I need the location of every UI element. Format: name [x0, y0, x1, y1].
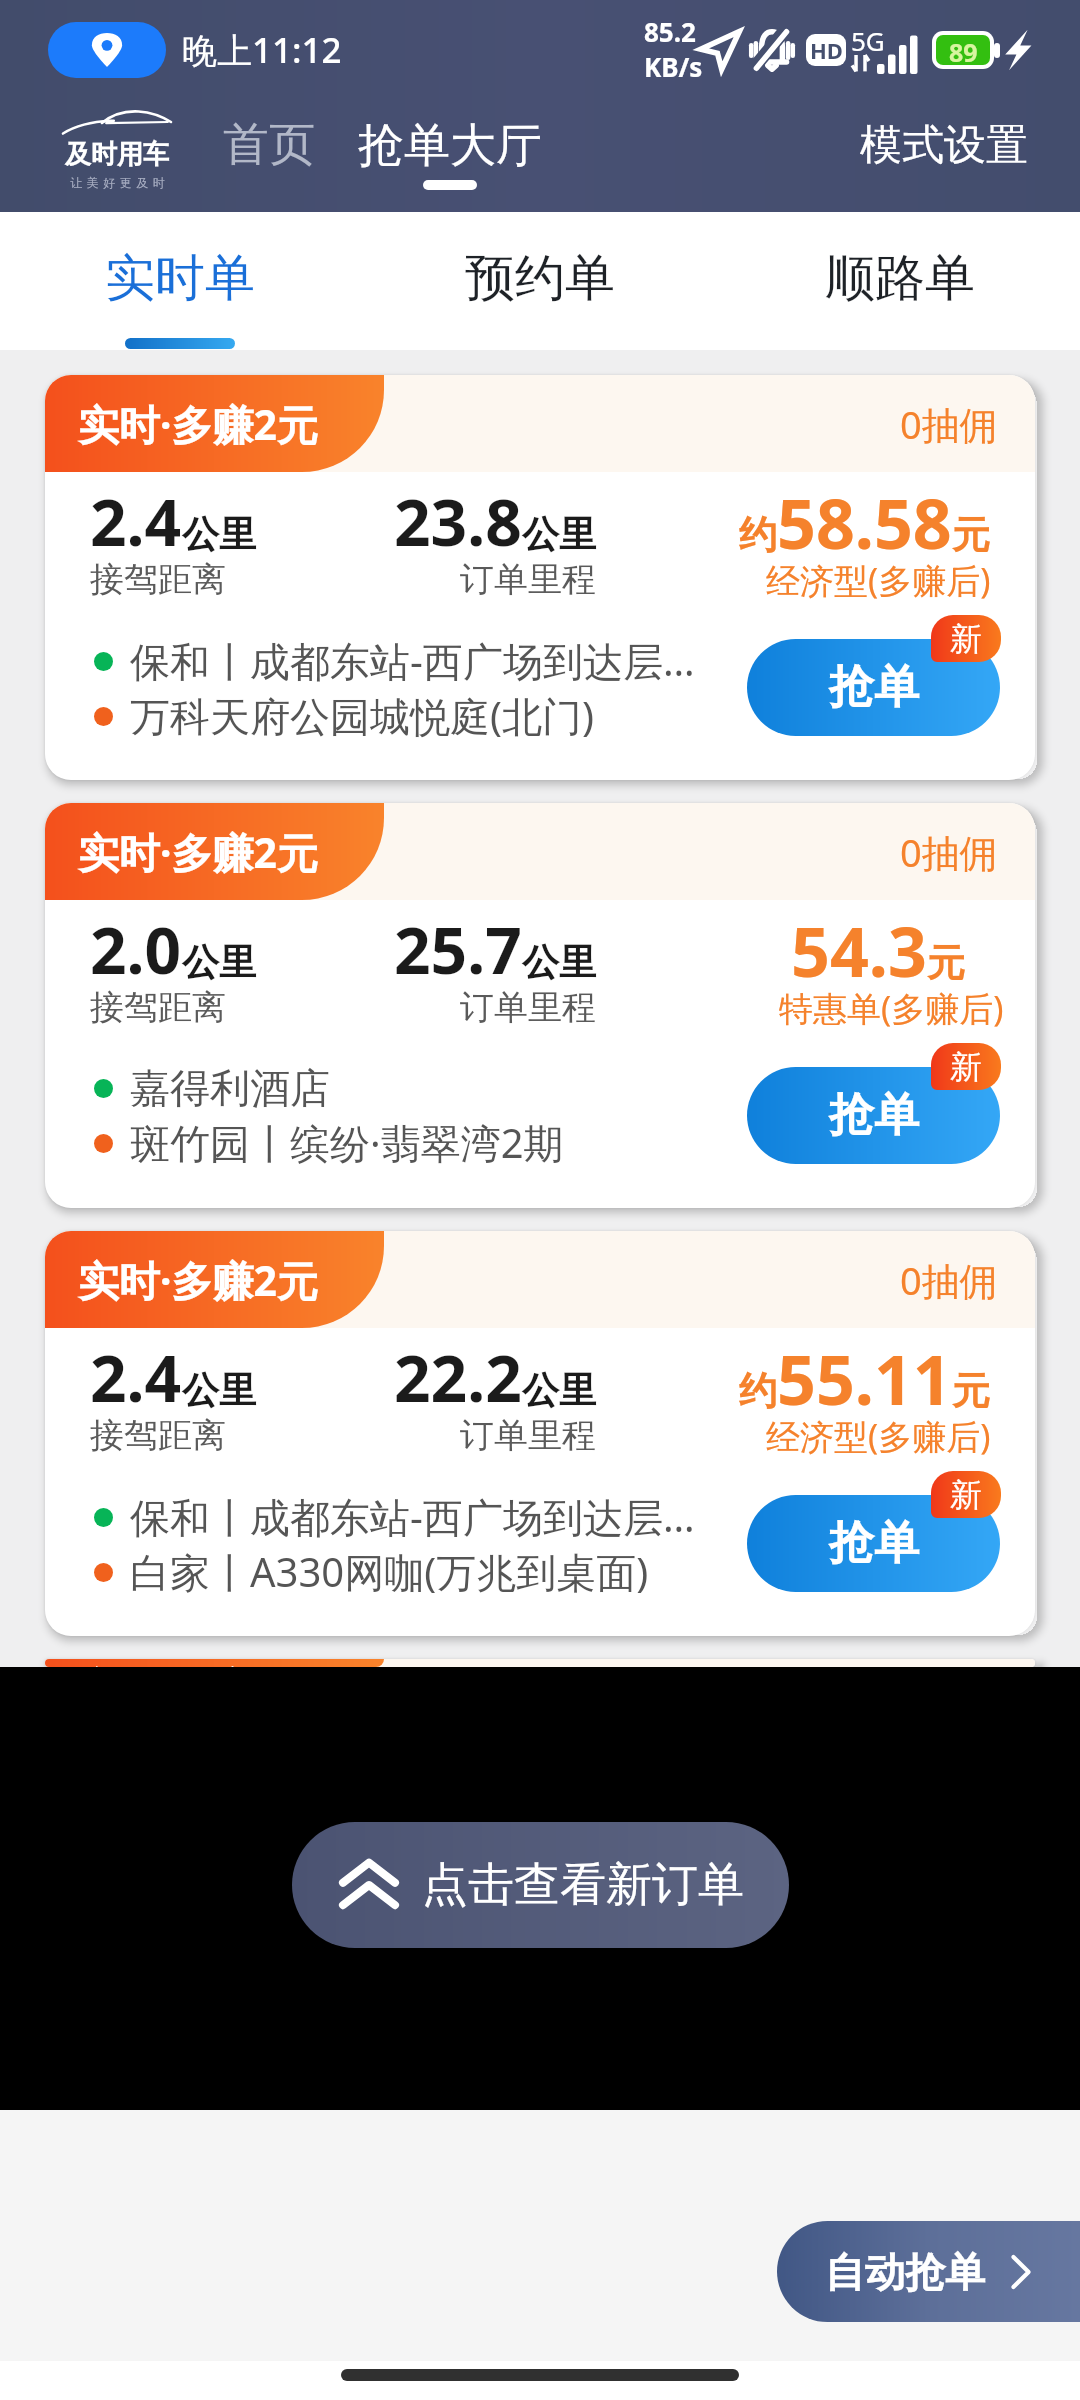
staticText: 54.3: [791, 904, 927, 997]
staticText: 斑竹园丨缤纷·翡翠湾2期: [130, 1115, 564, 1170]
staticText: 公里: [182, 1367, 256, 1414]
staticText: 抢单大厅: [358, 117, 542, 175]
staticText: 元: [927, 939, 965, 987]
staticText: 保和丨成都东站-西广场到达层…: [130, 633, 695, 688]
staticText: HD: [810, 35, 843, 65]
button[interactable]: 实时·多赚2元: [45, 803, 1035, 1208]
staticText: 0抽佣: [900, 398, 998, 450]
staticText: 接驾距离: [90, 558, 226, 601]
staticText: 公里: [522, 1367, 596, 1414]
button[interactable]: 抢单: [747, 1495, 1000, 1592]
staticText: 晚上11:12: [182, 26, 342, 74]
staticText: 0抽佣: [900, 1254, 998, 1306]
staticText: 经济型(多赚后): [766, 557, 991, 603]
staticText: 经济型(多赚后): [766, 1413, 991, 1459]
staticText: 订单里程: [460, 986, 596, 1029]
staticText: 2.0: [90, 906, 182, 993]
staticText: 万科天府公园城悦庭(北门): [130, 688, 594, 743]
staticText: 0抽佣: [900, 826, 998, 878]
staticText: 22.2: [394, 1334, 522, 1421]
staticText: 实时·多赚2元: [78, 1252, 318, 1308]
staticText: 接驾距离: [90, 1414, 226, 1457]
button[interactable]: 抢单大厅: [352, 117, 548, 190]
staticText: 约: [739, 1367, 777, 1415]
staticText: 抢单: [829, 659, 919, 716]
staticText: 实时·多赚2元: [78, 824, 318, 880]
staticText: 模式设置: [860, 119, 1028, 172]
staticText: 元: [952, 1367, 990, 1415]
button[interactable]: 模式设置: [860, 119, 1028, 172]
staticText: 点击查看新订单: [422, 1856, 744, 1914]
staticText: 抢单: [829, 1087, 919, 1144]
staticText: 89: [949, 35, 978, 65]
staticText: 嘉得利酒店: [130, 1063, 330, 1113]
staticText: 顺路单: [825, 247, 975, 310]
staticText: 实时单: [105, 247, 255, 310]
button[interactable]: 顺路单: [720, 212, 1080, 350]
staticText: 新: [950, 619, 982, 659]
staticText: 首页: [223, 116, 315, 174]
staticText: 公里: [522, 939, 596, 986]
staticText: 白家丨A330网咖(万兆到桌面): [130, 1544, 649, 1599]
button[interactable]: 首页: [217, 116, 321, 174]
button[interactable]: 实时单: [0, 212, 360, 350]
button[interactable]: 实时·多赚2元: [45, 1231, 1035, 1636]
staticText: 公里: [182, 511, 256, 558]
staticText: 实时·多赚2元: [78, 396, 318, 452]
staticText: 2.4: [90, 1334, 182, 1421]
button[interactable]: 预约单: [360, 212, 720, 350]
staticText: 及时用车: [65, 138, 169, 171]
staticText: 约: [739, 511, 777, 559]
staticText: 58.58: [777, 476, 952, 569]
staticText: 公里: [522, 511, 596, 558]
staticText: 新: [950, 1475, 982, 1515]
staticText: 保和丨成都东站-西广场到达层…: [130, 1489, 695, 1544]
staticText: 订单里程: [460, 558, 596, 601]
staticText: 实时·多赚2元: [78, 1659, 318, 1667]
button[interactable]: 抢单: [747, 639, 1000, 736]
button[interactable]: 抢单: [747, 1067, 1000, 1164]
staticText: 抢单: [829, 1515, 919, 1572]
staticText: 23.8: [394, 478, 522, 565]
button[interactable]: 实时·多赚2元: [45, 1659, 1035, 1667]
staticText: 让美好更及时: [68, 175, 167, 190]
staticText: 2.4: [90, 478, 182, 565]
button[interactable]: 自动抢单: [777, 2221, 1080, 2322]
staticText: 订单里程: [460, 1414, 596, 1457]
staticText: 公里: [182, 939, 256, 986]
staticText: 接驾距离: [90, 986, 226, 1029]
staticText: 85.2: [644, 14, 696, 49]
staticText: 25.7: [394, 906, 522, 993]
staticText: 特惠单(多赚后): [779, 985, 1004, 1031]
staticText: KB/s: [644, 49, 703, 84]
staticText: 新: [950, 1047, 982, 1087]
staticText: 55.11: [777, 1332, 952, 1425]
staticText: 5G: [851, 23, 885, 58]
button[interactable]: 点击查看新订单: [292, 1822, 789, 1948]
staticText: 自动抢单: [825, 2247, 985, 2297]
staticText: 预约单: [465, 247, 615, 310]
staticText: 元: [952, 511, 990, 559]
button[interactable]: 实时·多赚2元: [45, 375, 1035, 780]
